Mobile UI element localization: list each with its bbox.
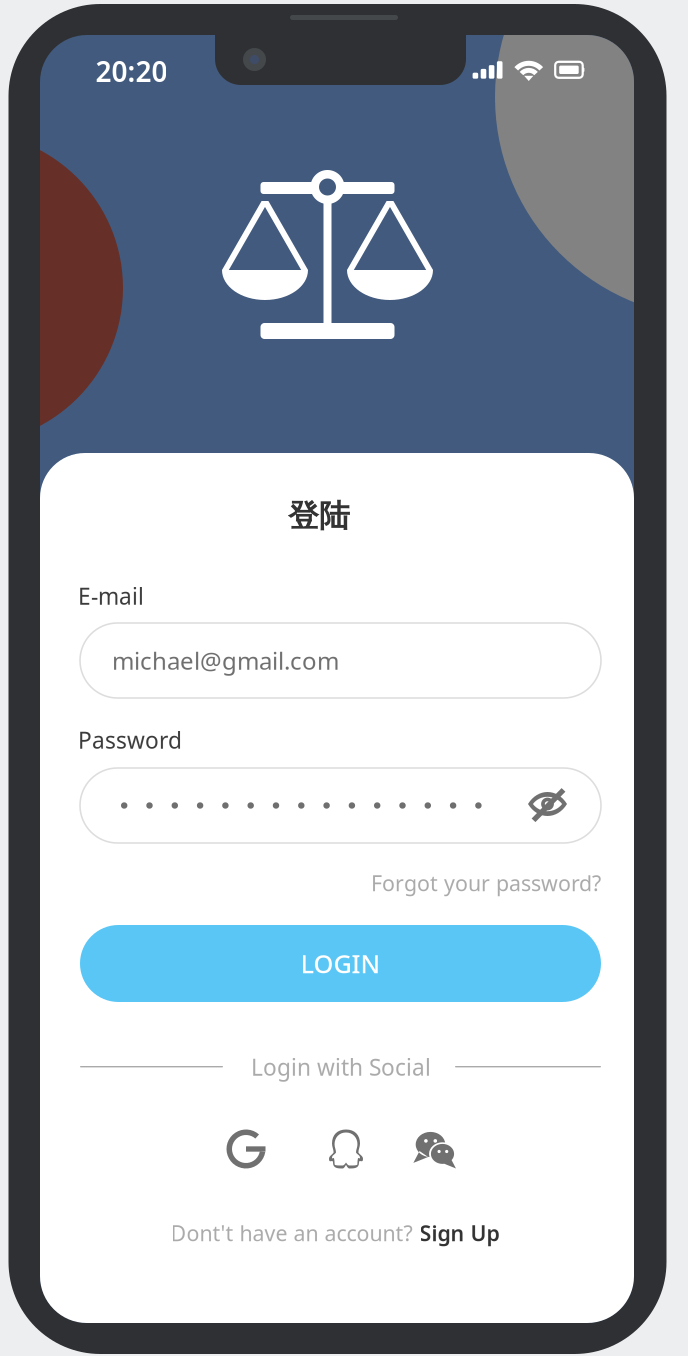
staticText: 登陆 [288,497,350,535]
button[interactable]: michael@gmail.com [80,623,601,698]
button[interactable]: LOGIN [80,925,601,1002]
staticText: E-mail [78,581,144,611]
button[interactable]: Sign in with QQ [315,1122,377,1176]
staticText: Password [78,725,182,755]
staticText: LOGIN [300,947,380,980]
staticText: Dont't have an account? [170,1219,412,1247]
button[interactable]: Forgot your password? [80,865,601,901]
button[interactable]: Sign in with Google [215,1122,277,1176]
staticText: michael@gmail.com [112,645,339,676]
staticText: Forgot your password? [371,869,601,897]
staticText: Login with Social [251,1052,431,1082]
staticText: 20:20 [95,52,167,90]
staticText: Sign Up [419,1219,499,1247]
button[interactable]: Dont't have an account? [38,1216,632,1250]
button[interactable]: Sign in with WeChat [404,1122,466,1176]
button[interactable] [80,768,601,843]
